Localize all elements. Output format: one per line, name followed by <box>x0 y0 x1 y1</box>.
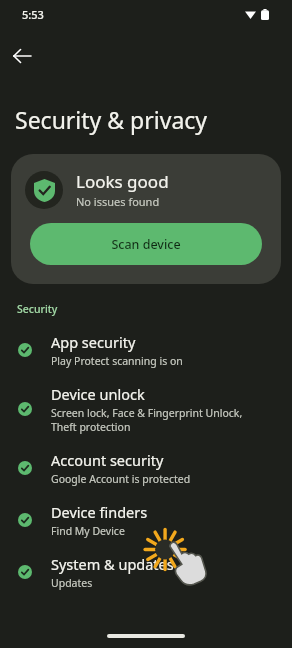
button[interactable]: System & updates <box>0 546 292 598</box>
button[interactable]: Device unlock <box>0 376 292 442</box>
staticText: System & updates <box>51 554 174 574</box>
staticText: 5:53 <box>22 7 44 22</box>
staticText: Google Account is protected <box>51 472 191 486</box>
staticText: Device finders <box>51 502 148 522</box>
staticText: Find My Device <box>51 524 125 538</box>
staticText: Updates <box>51 576 93 590</box>
staticText: Account security <box>51 450 164 470</box>
button[interactable]: Back <box>0 34 44 78</box>
button[interactable]: Scan device <box>30 223 262 265</box>
button[interactable]: Device finders <box>0 494 292 546</box>
button[interactable]: Account security <box>0 442 292 494</box>
staticText: Play Protect scanning is on <box>51 354 183 368</box>
staticText: Looks good <box>76 170 169 193</box>
staticText: App security <box>51 332 136 352</box>
staticText: Screen lock, Face & Fingerprint Unlock, … <box>51 406 266 434</box>
staticText: Security <box>17 302 58 316</box>
staticText: Device unlock <box>51 384 145 404</box>
staticText: No issues found <box>76 194 160 209</box>
button[interactable]: App security <box>0 324 292 376</box>
staticText: Security & privacy <box>15 104 208 135</box>
staticText: Scan device <box>111 236 181 253</box>
